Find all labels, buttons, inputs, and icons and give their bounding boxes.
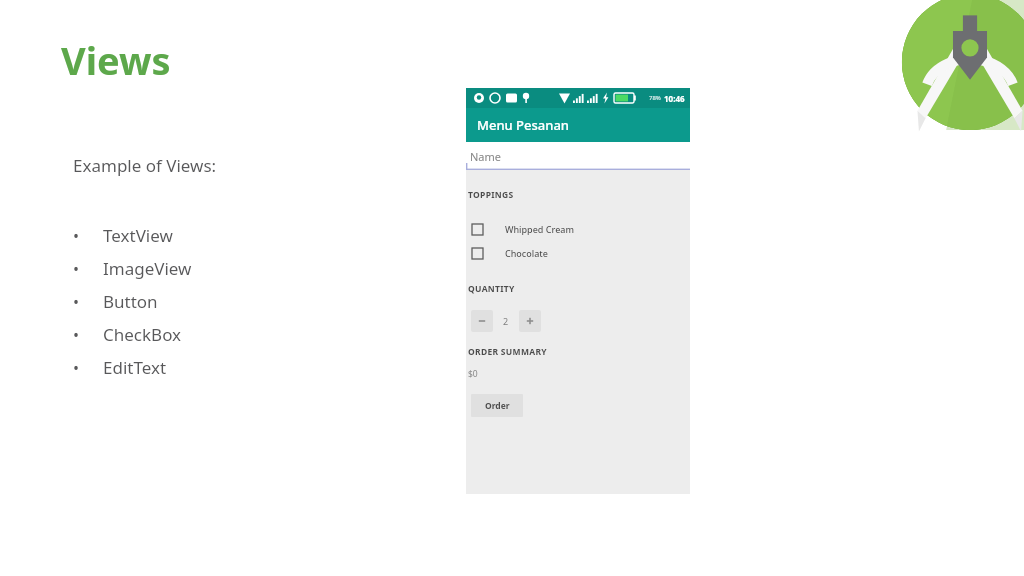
staticText: • <box>73 291 80 313</box>
button[interactable]: • <box>73 219 173 252</box>
staticText: Name <box>470 149 502 164</box>
button[interactable]: Name <box>466 142 690 170</box>
staticText: 2 <box>503 315 509 327</box>
button[interactable]: Whipped Cream <box>466 220 690 238</box>
button[interactable]: • <box>73 318 182 351</box>
staticText: ImageView <box>103 257 192 280</box>
staticText: CheckBox <box>103 323 182 346</box>
staticText: Whipped Cream <box>505 223 574 235</box>
staticText: TextView <box>103 224 173 247</box>
button[interactable]: • <box>73 252 192 285</box>
button[interactable]: • <box>73 285 158 318</box>
staticText: ORDER SUMMARY <box>468 346 547 358</box>
staticText: Views <box>61 34 171 86</box>
button[interactable]: Increase quantity <box>519 310 541 332</box>
staticText: Menu Pesanan <box>477 116 569 134</box>
staticText: Button <box>103 290 158 313</box>
staticText: • <box>73 225 80 247</box>
staticText: • <box>73 357 80 379</box>
staticText: 78% <box>649 94 661 102</box>
button[interactable]: Chocolate <box>466 244 690 262</box>
staticText: • <box>73 258 80 280</box>
staticText: 10:46 <box>664 93 685 104</box>
staticText: EditText <box>103 356 167 379</box>
staticText: TOPPINGS <box>468 189 514 201</box>
staticText: Order <box>485 400 510 412</box>
staticText: QUANTITY <box>468 283 515 295</box>
button[interactable]: Order <box>471 394 523 417</box>
button[interactable]: Decrease quantity <box>471 310 493 332</box>
button[interactable]: • <box>73 351 167 384</box>
staticText: • <box>73 324 80 346</box>
staticText: Chocolate <box>505 247 548 259</box>
staticText: $0 <box>468 368 478 380</box>
staticText: Example of Views: <box>73 154 217 177</box>
button[interactable]: Menu Pesanan <box>466 108 690 142</box>
